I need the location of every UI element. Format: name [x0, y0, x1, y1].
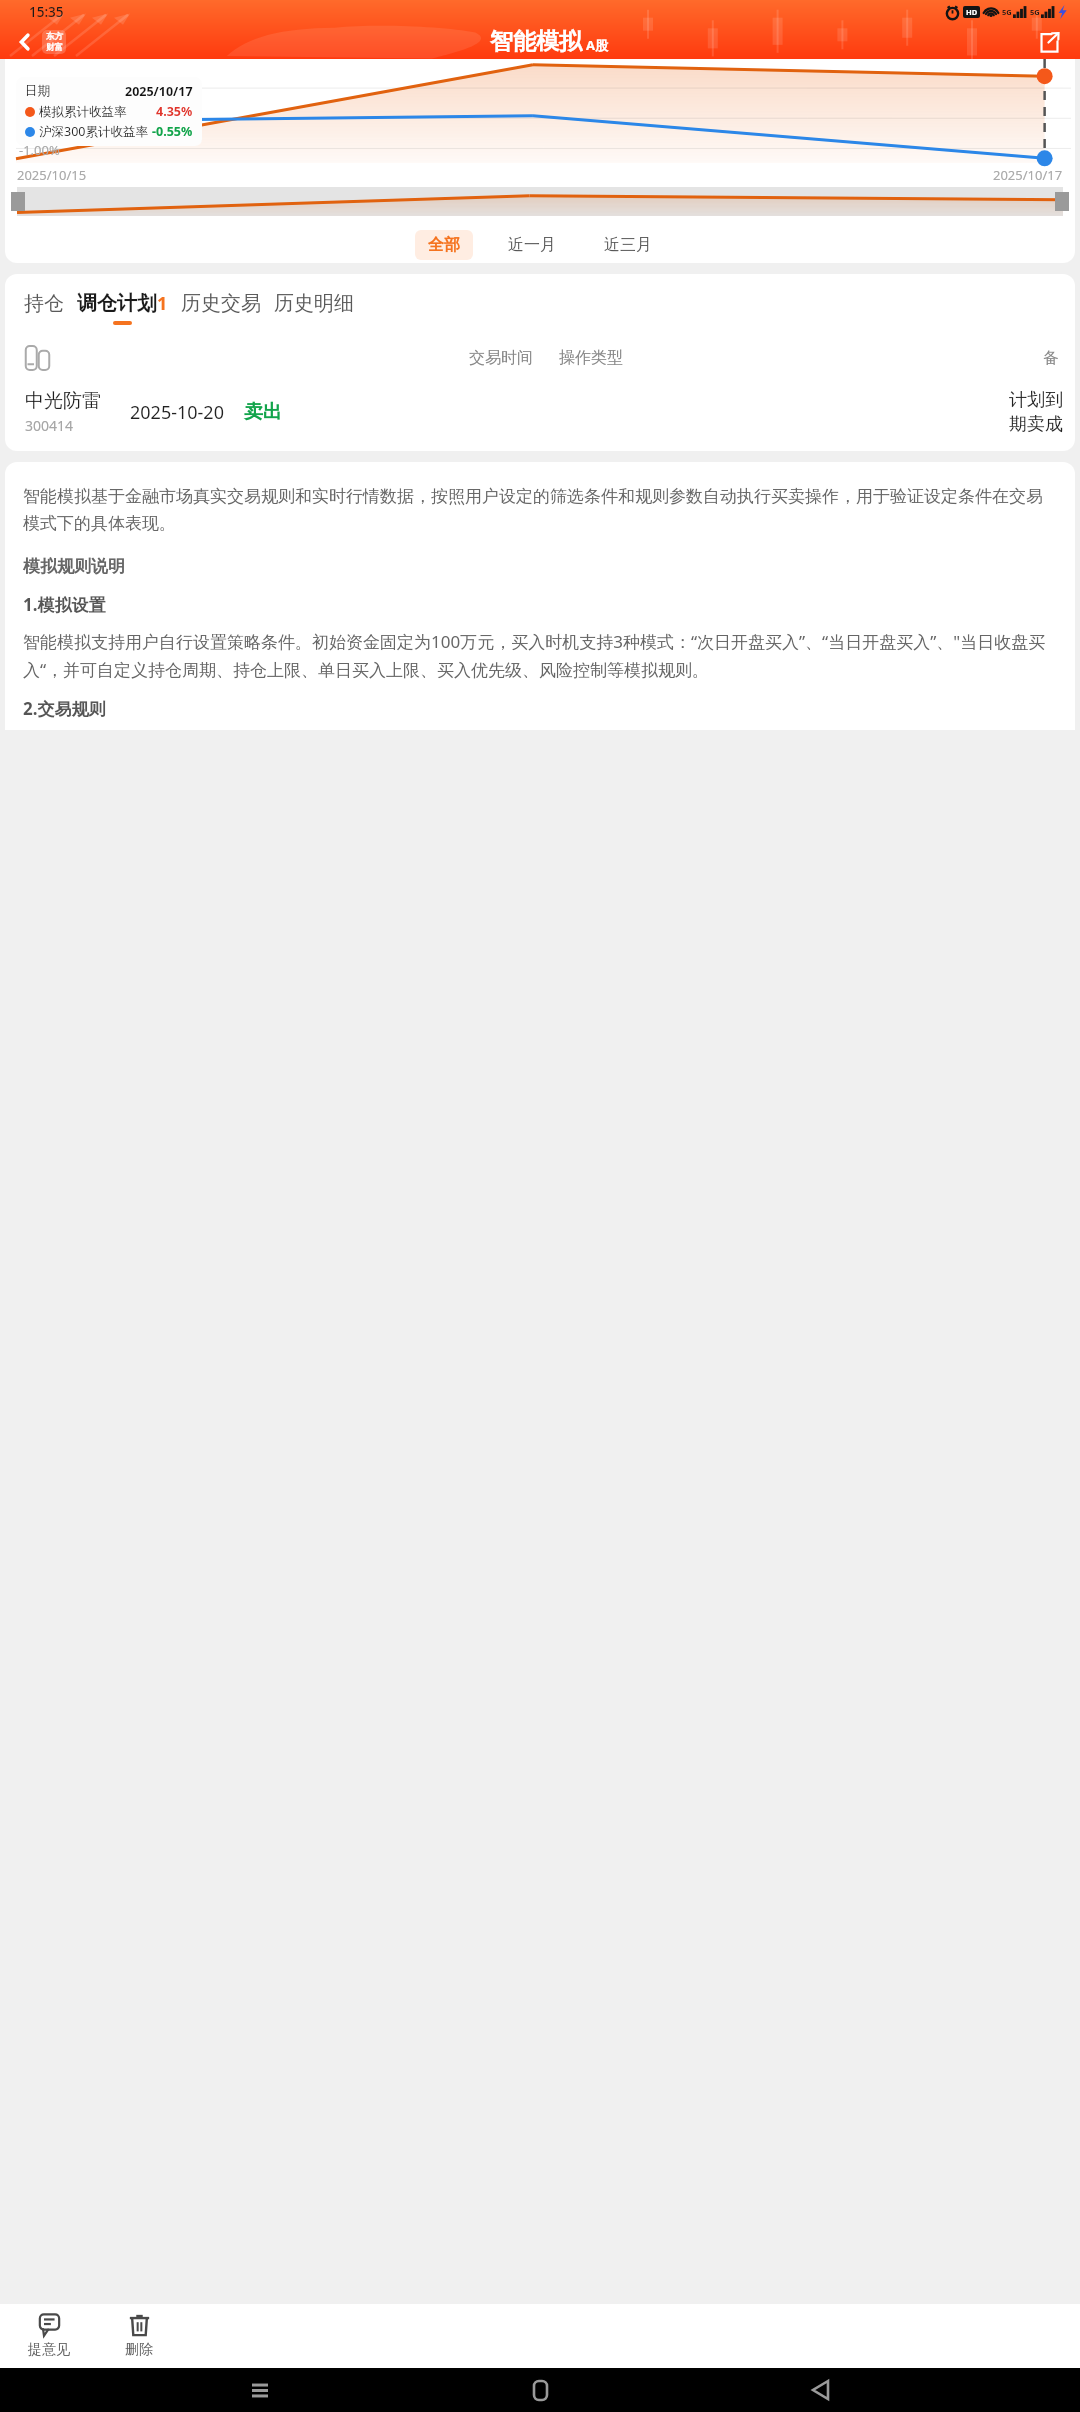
staticText: -1.00% — [19, 141, 60, 159]
button[interactable]: 全部 — [415, 230, 473, 260]
staticText: 2025-10-20 — [130, 400, 224, 425]
button[interactable]: 东方 — [42, 30, 66, 54]
staticText: 2025/10/17 — [125, 83, 193, 100]
other: Columns — [25, 345, 50, 371]
button[interactable]: 删除 — [104, 2309, 174, 2363]
button[interactable]: 近三月 — [591, 230, 665, 260]
button[interactable]: 近一月 — [495, 230, 569, 260]
staticText: 历史交易 — [181, 291, 261, 316]
staticText: 1.模拟设置 — [23, 593, 106, 616]
staticText: 沪深300累计收益率 — [39, 123, 148, 140]
staticText: 智能模拟 — [490, 27, 582, 56]
staticText: 1 — [157, 291, 168, 316]
staticText: 计划到期卖成 — [997, 389, 1063, 435]
staticText: 2025/10/17 — [993, 166, 1063, 184]
staticText: 2.交易规则 — [23, 697, 106, 720]
button[interactable]: 提意见 — [14, 2309, 84, 2363]
staticText: 4.35% — [156, 103, 193, 120]
button[interactable]: Back — [8, 25, 42, 59]
staticText: 调仓计划 — [77, 291, 157, 316]
staticText: 操作类型 — [559, 348, 623, 368]
staticText: 5G — [1002, 7, 1012, 17]
staticText: 删除 — [125, 2341, 153, 2359]
staticText: 2025/10/15 — [17, 166, 87, 184]
button[interactable]: Home — [520, 2370, 560, 2410]
button[interactable]: 历史交易 — [181, 291, 261, 325]
staticText: 智能模拟支持用户自行设置策略条件。初始资金固定为100万元，买入时机支持3种模式… — [23, 630, 1059, 681]
button[interactable]: 调仓计划 — [77, 291, 168, 325]
staticText: 近一月 — [508, 235, 556, 255]
staticText: 备 — [1043, 348, 1059, 368]
staticText: -0.55% — [152, 123, 193, 140]
staticText: A股 — [586, 36, 608, 54]
staticText: 模拟规则说明 — [23, 556, 125, 577]
button[interactable]: Back — [800, 2370, 840, 2410]
staticText: 近三月 — [604, 235, 652, 255]
staticText: 5G — [1030, 7, 1040, 17]
staticText: HD — [966, 7, 978, 17]
button[interactable]: Recents — [240, 2370, 280, 2410]
staticText: 历史明细 — [274, 291, 354, 316]
staticText: 东方 — [46, 31, 63, 42]
staticText: 财富 — [46, 42, 63, 53]
staticText: 日期 — [25, 83, 50, 99]
staticText: 持仓 — [24, 291, 64, 316]
button[interactable]: 持仓 — [24, 291, 64, 325]
staticText: 交易时间 — [469, 348, 533, 368]
staticText: 全部 — [428, 235, 460, 255]
staticText: 模拟累计收益率 — [39, 104, 127, 120]
staticText: 中光防雷 — [25, 389, 101, 413]
staticText: 提意见 — [28, 2341, 70, 2359]
staticText: 卖出 — [244, 400, 282, 424]
button[interactable]: 历史明细 — [274, 291, 354, 325]
button[interactable]: 中光防雷 — [5, 389, 1075, 435]
staticText: 15:35 — [29, 3, 64, 21]
staticText: 智能模拟基于金融市场真实交易规则和实时行情数据，按照用户设定的筛选条件和规则参数… — [23, 486, 1059, 534]
button[interactable]: Share — [1032, 25, 1066, 59]
staticText: 300414 — [25, 416, 74, 435]
